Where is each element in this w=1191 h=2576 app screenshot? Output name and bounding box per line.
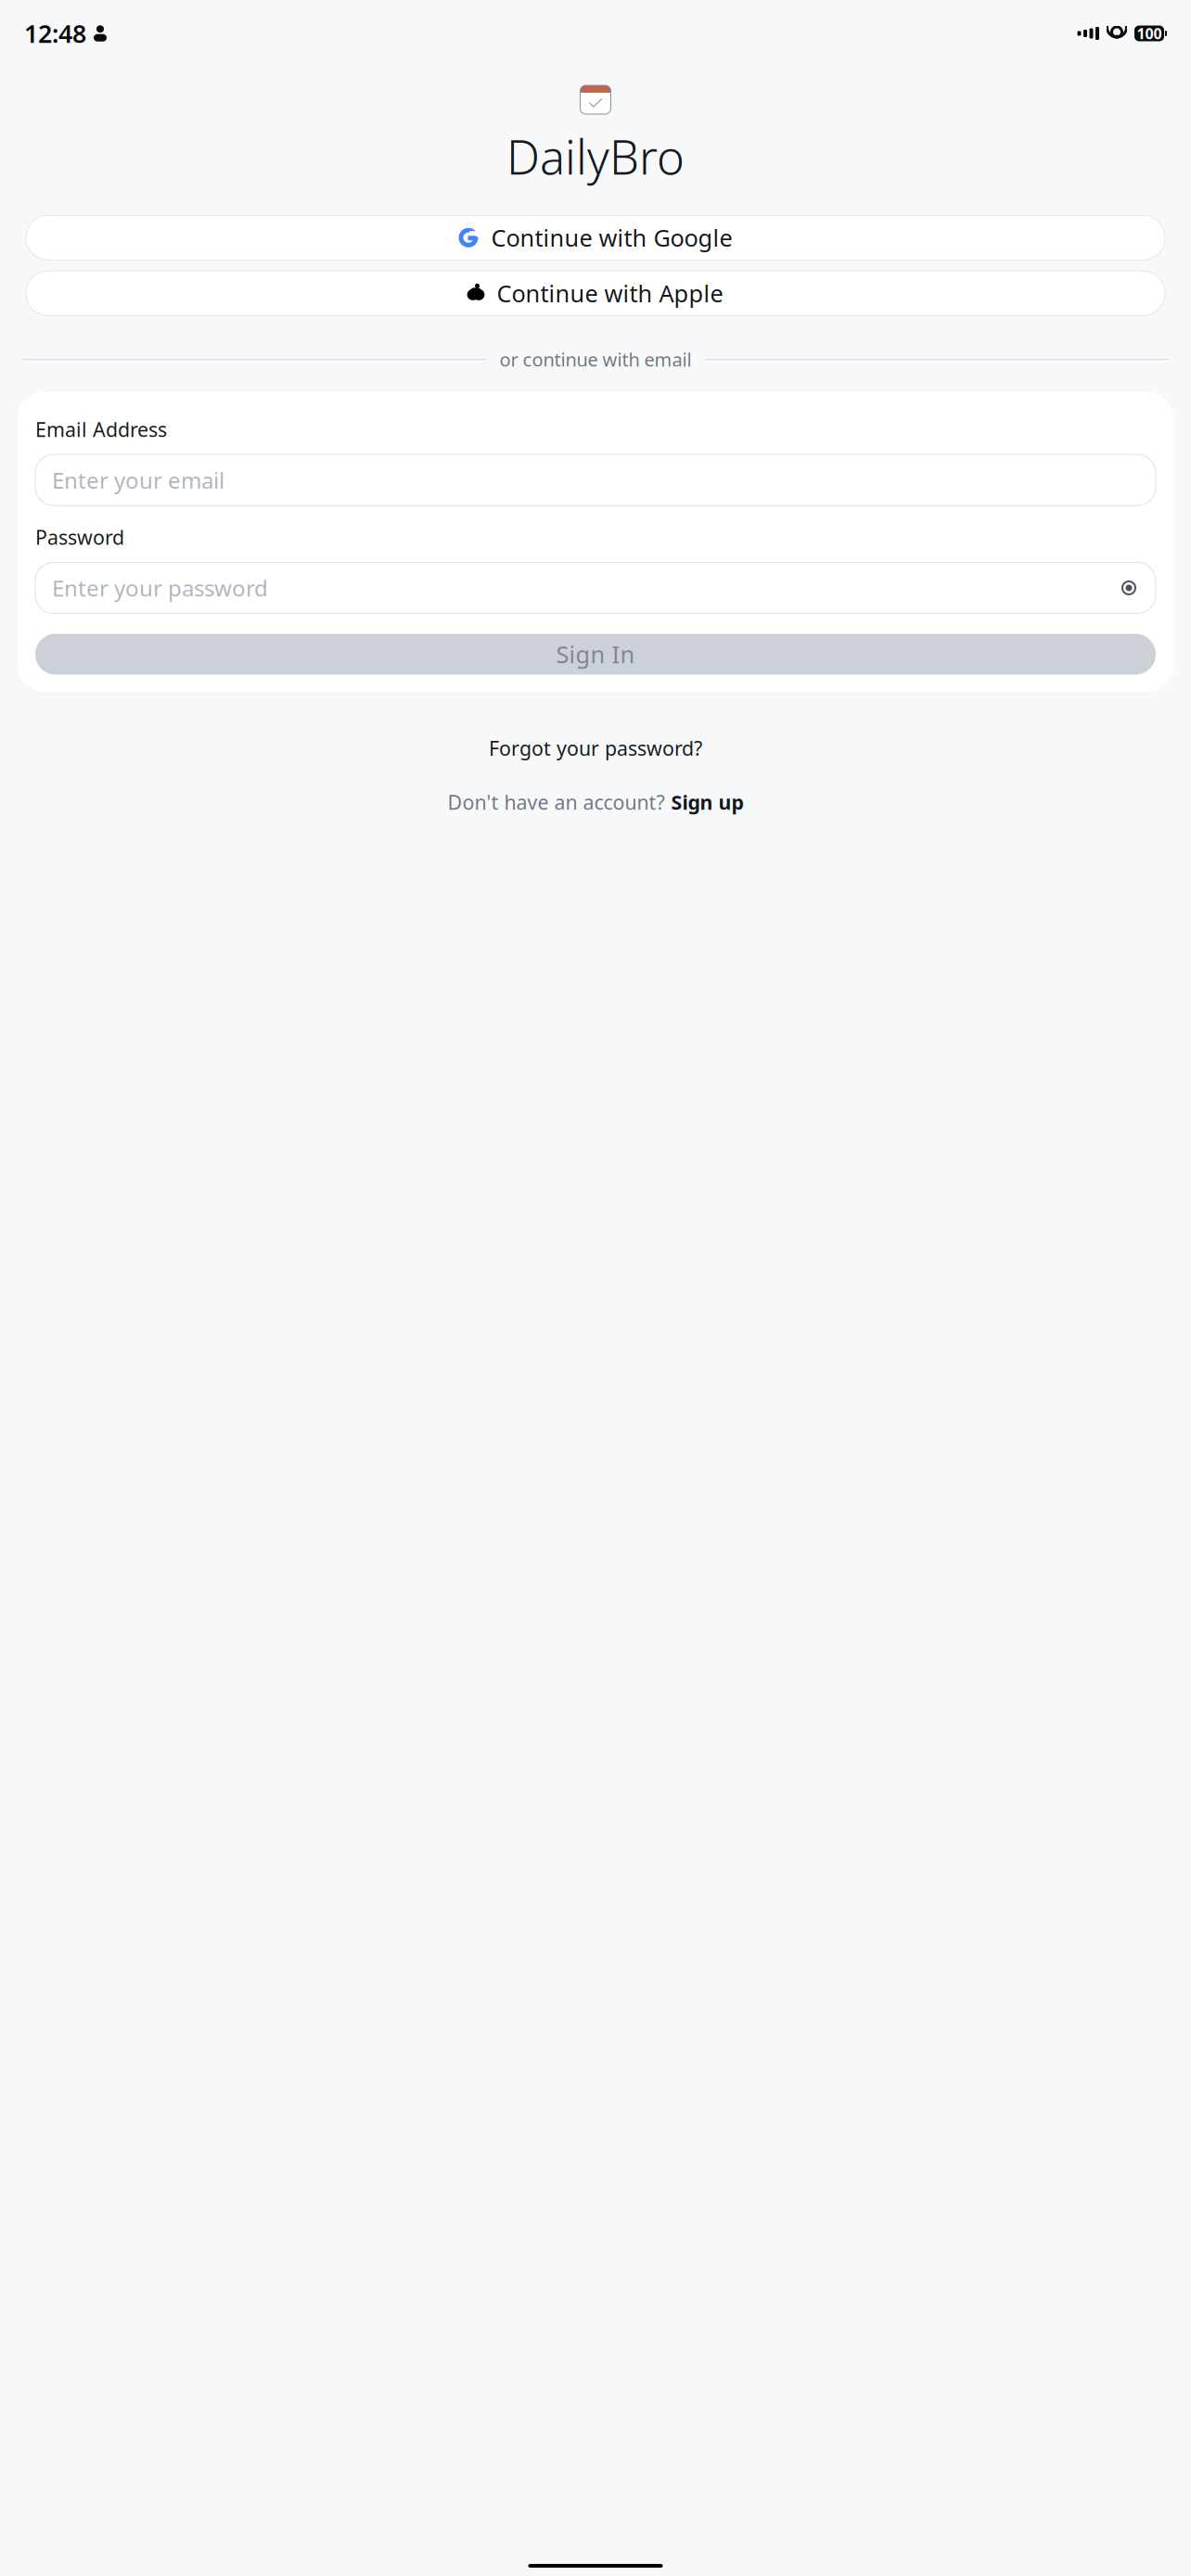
- staticText: DailyBro: [506, 125, 685, 188]
- button[interactable]: Enter your password: [35, 562, 1156, 613]
- button[interactable]: Continue with Google: [0, 215, 1191, 260]
- staticText: Sign up: [671, 789, 743, 815]
- button[interactable]: Forgot your password?: [476, 727, 715, 769]
- staticText: Don't have an account?: [448, 789, 665, 815]
- button[interactable]: Continue with Apple: [0, 271, 1191, 316]
- staticText: 100: [1137, 24, 1162, 43]
- staticText: Forgot your password?: [489, 735, 702, 761]
- staticText: Sign In: [556, 639, 635, 670]
- button[interactable]: Enter your email: [35, 455, 1156, 506]
- staticText: Enter your password: [52, 573, 268, 603]
- staticText: Password: [35, 524, 124, 550]
- staticText: Continue with Google: [491, 222, 732, 253]
- staticText: Email Address: [35, 416, 167, 442]
- staticText: Continue with Apple: [497, 278, 723, 309]
- staticText: Enter your email: [52, 465, 224, 495]
- staticText: 12:48: [24, 17, 86, 50]
- button[interactable]: Sign In: [35, 634, 1156, 675]
- staticText: or continue with email: [499, 347, 692, 372]
- button[interactable]: Don't have an account?: [435, 782, 756, 823]
